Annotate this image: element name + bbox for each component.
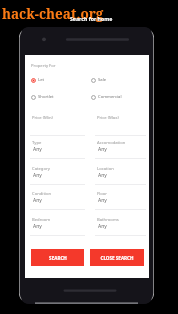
staticText: Floor — [97, 191, 108, 197]
button[interactable]: Condition — [30, 188, 85, 212]
staticText: Shortlet — [38, 94, 54, 100]
staticText: CLOSE SEARCH — [100, 255, 134, 261]
button[interactable]: Price (Min) — [30, 109, 85, 137]
staticText: Bathrooms — [97, 217, 119, 223]
staticText: Any — [33, 146, 42, 153]
staticText: Property For — [31, 63, 56, 69]
button[interactable]: Commercial — [91, 93, 141, 101]
staticText: Price (Min) — [32, 115, 53, 121]
staticText: Sale — [98, 77, 107, 83]
button[interactable]: Floor — [95, 188, 146, 212]
button[interactable]: Bathrooms — [95, 214, 146, 238]
button[interactable]: Let — [31, 76, 81, 84]
button[interactable]: Sale — [91, 76, 141, 84]
button[interactable]: CLOSE SEARCH — [90, 249, 144, 266]
button[interactable]: Bedroom — [30, 214, 85, 238]
staticText: Any — [98, 172, 107, 179]
staticText: Any — [33, 197, 42, 204]
staticText: Type — [32, 140, 42, 146]
staticText: Commercial — [98, 94, 122, 100]
staticText: Any — [33, 172, 42, 179]
staticText: Price (Max) — [97, 115, 119, 121]
button[interactable]: Category — [30, 163, 85, 187]
button[interactable]: Location — [95, 163, 146, 187]
button[interactable]: Type — [30, 137, 85, 161]
button[interactable]: Shortlet — [31, 93, 81, 101]
staticText: Any — [98, 223, 107, 230]
button[interactable]: SEARCH — [31, 249, 84, 266]
staticText: Category — [32, 166, 50, 172]
button[interactable]: Accomodation — [95, 137, 146, 161]
staticText: SEARCH — [49, 255, 67, 261]
button[interactable]: Price (Max) — [95, 109, 146, 137]
staticText: Search for home — [70, 15, 113, 22]
staticText: hack-cheat.org — [2, 5, 104, 23]
staticText: Let — [38, 77, 45, 83]
staticText: Any — [98, 146, 107, 153]
staticText: Any — [33, 223, 42, 230]
staticText: Condition — [32, 191, 52, 197]
staticText: Bedroom — [32, 217, 51, 223]
staticText: Location — [97, 166, 114, 172]
staticText: Any — [98, 197, 107, 204]
staticText: Accomodation — [97, 140, 126, 146]
